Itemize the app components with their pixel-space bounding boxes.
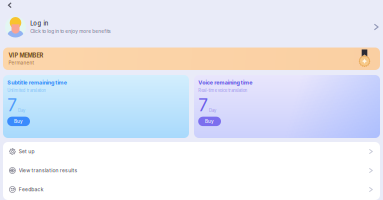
staticText: Set up <box>19 148 34 154</box>
staticText: Day <box>18 108 25 113</box>
button[interactable]: Buy <box>198 117 221 126</box>
button[interactable]: View translation results <box>3 161 380 180</box>
staticText: 7 <box>7 94 17 115</box>
staticText: Subtitle remaining time <box>7 79 67 86</box>
staticText: Log in <box>30 20 48 27</box>
staticText: View translation results <box>19 167 77 173</box>
button[interactable]: Feedback <box>3 180 380 199</box>
staticText: Buy <box>14 119 23 124</box>
button[interactable]: Buy <box>7 117 30 126</box>
staticText: VIP MEMBER <box>8 52 43 59</box>
staticText: Real-time voice translation <box>198 88 247 93</box>
staticText: Feedback <box>19 186 43 192</box>
staticText: Day <box>209 108 216 113</box>
button[interactable]: Log in <box>0 14 383 40</box>
staticText: Unlimited translation <box>7 88 45 93</box>
staticText: Buy <box>205 119 214 124</box>
button[interactable]: Set up <box>3 142 380 161</box>
staticText: Voice remaining time <box>198 79 252 86</box>
staticText: 7 <box>198 94 208 115</box>
button[interactable]: Back <box>2 0 18 13</box>
staticText: Permanent <box>8 60 34 66</box>
staticText: Click to log in to enjoy more benefits <box>30 28 110 34</box>
